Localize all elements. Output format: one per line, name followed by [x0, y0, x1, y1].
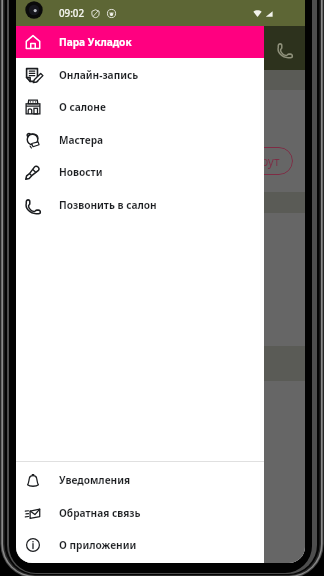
staticText: Мастера [59, 133, 104, 147]
button[interactable]: О салоне [16, 91, 264, 123]
button[interactable]: Онлайн-запись [16, 59, 264, 91]
button[interactable]: Мастера [16, 124, 264, 156]
staticText: Онлайн-запись [59, 68, 139, 82]
button[interactable]: Пара Укладок [16, 26, 264, 58]
staticText: О салоне [59, 100, 106, 114]
button[interactable]: О приложении [16, 529, 264, 561]
staticText: Обратная связь [59, 506, 141, 520]
button[interactable]: Уведомления [16, 464, 264, 496]
staticText: 09:02 [59, 7, 85, 20]
button[interactable]: маршрут [213, 147, 293, 175]
staticText: Новости [59, 165, 103, 179]
button[interactable]: Обратная связь [16, 497, 264, 529]
button[interactable]: Позвонить в салон [16, 189, 264, 221]
staticText: Пара Укладок [59, 35, 132, 49]
staticText: О приложении [59, 538, 137, 552]
staticText: Позвонить в салон [59, 198, 157, 212]
staticText: маршрут [227, 153, 280, 169]
button[interactable]: Call [267, 31, 303, 67]
button[interactable]: Новости [16, 156, 264, 188]
staticText: Уведомления [59, 473, 131, 487]
